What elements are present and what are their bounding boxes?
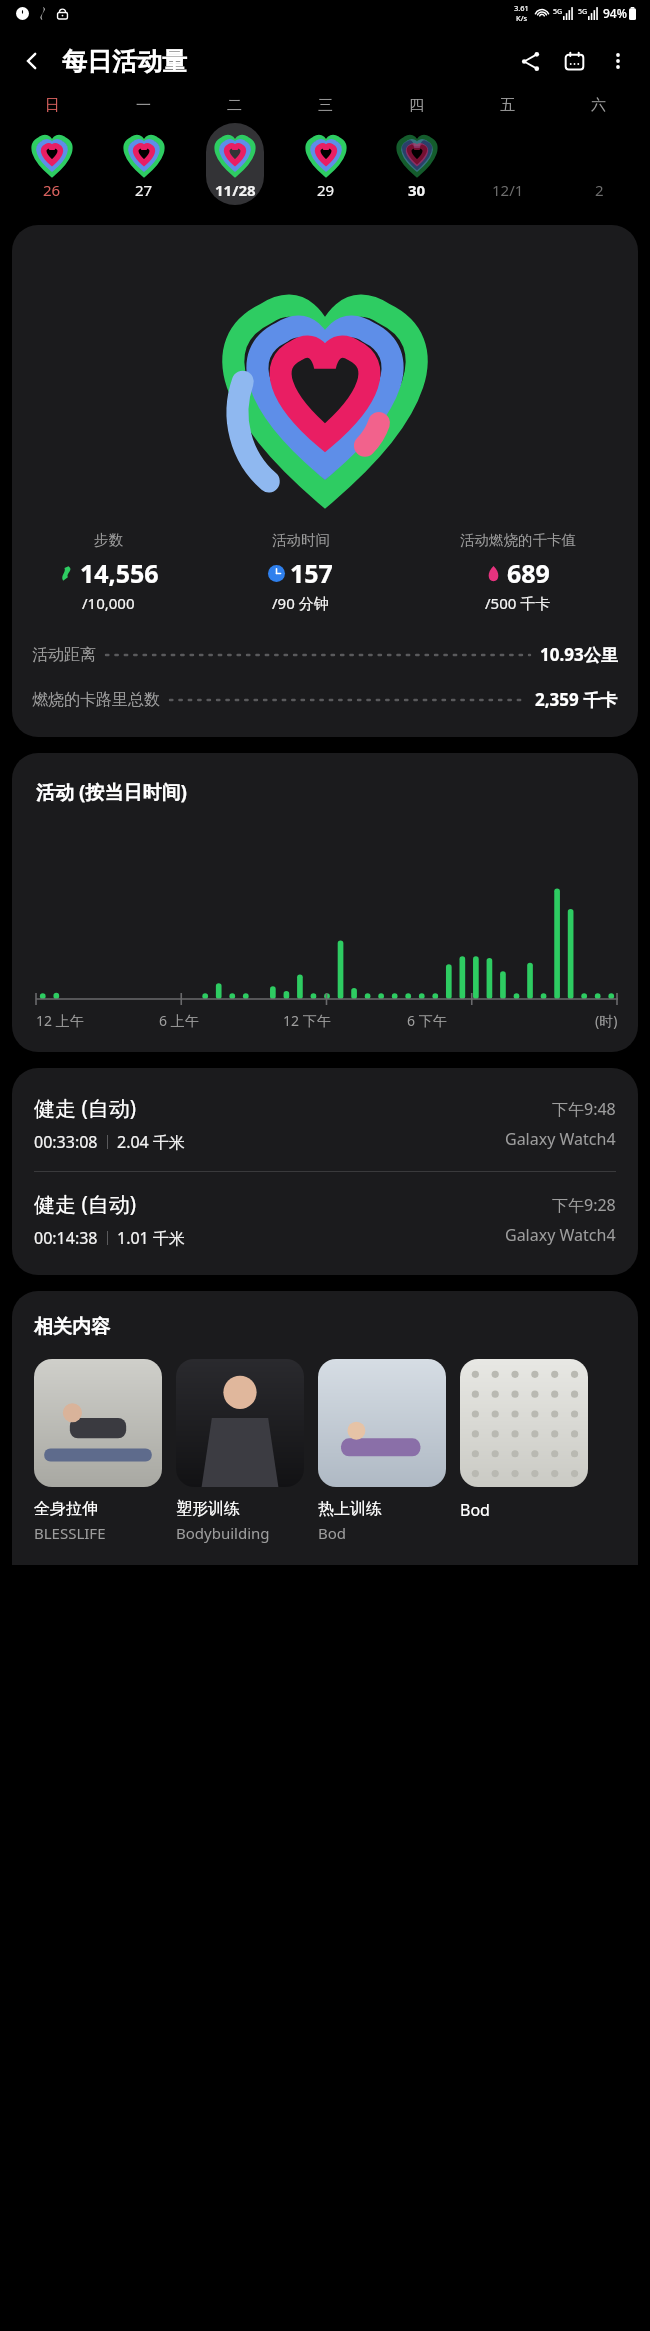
staticText: 热上训练 bbox=[318, 1499, 382, 1519]
staticText: (时) bbox=[595, 1011, 618, 1030]
staticText: 步数 bbox=[94, 531, 123, 549]
staticText: 12 下午 bbox=[283, 1011, 331, 1030]
staticText: 五 bbox=[500, 96, 515, 115]
staticText: 94% bbox=[603, 5, 627, 21]
staticText: 活动燃烧的千卡值 bbox=[460, 531, 576, 549]
button[interactable]: Calendar bbox=[552, 39, 596, 83]
button[interactable]: 活动距离 bbox=[12, 643, 638, 666]
button[interactable]: Share bbox=[508, 39, 552, 83]
staticText: 六 bbox=[591, 96, 606, 115]
button[interactable]: 塑形训练 bbox=[176, 1359, 304, 1543]
button[interactable]: 全身拉伸 bbox=[34, 1359, 162, 1543]
staticText: 1.01 千米 bbox=[117, 1227, 185, 1249]
staticText: 活动时间 bbox=[272, 531, 330, 549]
staticText: 活动距离 bbox=[32, 645, 96, 665]
staticText: 157 bbox=[290, 556, 333, 590]
button[interactable]: 活动 (按当日时间) bbox=[12, 753, 638, 1052]
button[interactable]: 29 bbox=[297, 123, 355, 205]
staticText: 2 bbox=[595, 180, 604, 200]
staticText: 健走 (自动) bbox=[34, 1190, 137, 1219]
button[interactable]: 12/1 bbox=[479, 123, 537, 205]
staticText: 12/1 bbox=[492, 180, 524, 200]
staticText: 6 下午 bbox=[407, 1011, 447, 1030]
staticText: /10,000 bbox=[82, 593, 135, 613]
staticText: Galaxy Watch4 bbox=[505, 1224, 616, 1246]
staticText: 燃烧的卡路里总数 bbox=[32, 690, 160, 710]
button[interactable]: 活动时间 bbox=[204, 531, 397, 613]
staticText: 2,359 千卡 bbox=[535, 688, 618, 711]
staticText: 全身拉伸 bbox=[34, 1499, 98, 1519]
button[interactable]: 健走 (自动) bbox=[12, 1172, 638, 1267]
staticText: 二 bbox=[227, 96, 242, 115]
staticText: 日 bbox=[45, 96, 60, 115]
staticText: 三 bbox=[318, 96, 333, 115]
button[interactable]: 26 bbox=[23, 123, 81, 205]
staticText: Bod bbox=[460, 1499, 490, 1521]
staticText: 健走 (自动) bbox=[34, 1094, 137, 1123]
button[interactable]: Bod bbox=[460, 1359, 588, 1525]
staticText: 3.61 bbox=[514, 3, 529, 13]
staticText: /90 分钟 bbox=[272, 593, 329, 613]
button[interactable]: 步数 bbox=[12, 531, 204, 613]
staticText: 下午9:28 bbox=[552, 1194, 616, 1216]
staticText: 00:14:38 bbox=[34, 1227, 98, 1249]
button[interactable]: More options bbox=[596, 39, 640, 83]
staticText: /500 千卡 bbox=[485, 593, 551, 613]
staticText: 689 bbox=[507, 556, 550, 590]
staticText: 29 bbox=[317, 180, 335, 200]
button[interactable]: 27 bbox=[115, 123, 173, 205]
staticText: 6 上午 bbox=[159, 1011, 199, 1030]
staticText: 12 上午 bbox=[36, 1011, 84, 1030]
staticText: 14,556 bbox=[80, 556, 159, 590]
button[interactable]: 步数 bbox=[12, 225, 638, 737]
staticText: 下午9:48 bbox=[552, 1098, 616, 1120]
staticText: 27 bbox=[135, 180, 153, 200]
button[interactable]: 11/28 bbox=[206, 123, 264, 205]
staticText: 活动 (按当日时间) bbox=[36, 779, 187, 805]
staticText: 30 bbox=[408, 180, 426, 200]
staticText: 10.93公里 bbox=[540, 643, 618, 666]
staticText: K/s bbox=[516, 13, 528, 23]
staticText: 2.04 千米 bbox=[117, 1131, 185, 1153]
staticText: 一 bbox=[136, 96, 151, 115]
staticText: 26 bbox=[43, 180, 61, 200]
button[interactable]: 2 bbox=[570, 123, 628, 205]
button[interactable]: 30 bbox=[388, 123, 446, 205]
button[interactable]: Back bbox=[10, 39, 54, 83]
staticText: 塑形训练 bbox=[176, 1499, 240, 1519]
staticText: 5G bbox=[553, 7, 563, 17]
button[interactable]: 活动燃烧的千卡值 bbox=[397, 531, 638, 613]
staticText: 5G bbox=[578, 7, 588, 17]
staticText: 相关内容 bbox=[34, 1315, 110, 1339]
staticText: 四 bbox=[409, 96, 424, 115]
button[interactable]: 健走 (自动) bbox=[12, 1076, 638, 1171]
staticText: BLESSLIFE bbox=[34, 1523, 106, 1543]
staticText: 00:33:08 bbox=[34, 1131, 98, 1153]
button[interactable]: 燃烧的卡路里总数 bbox=[12, 688, 638, 711]
staticText: 每日活动量 bbox=[62, 46, 187, 77]
staticText: Bod bbox=[318, 1523, 347, 1543]
staticText: Galaxy Watch4 bbox=[505, 1128, 616, 1150]
staticText: Bodybuilding bbox=[176, 1523, 270, 1543]
staticText: 11/28 bbox=[215, 180, 256, 200]
button[interactable]: 热上训练 bbox=[318, 1359, 446, 1543]
